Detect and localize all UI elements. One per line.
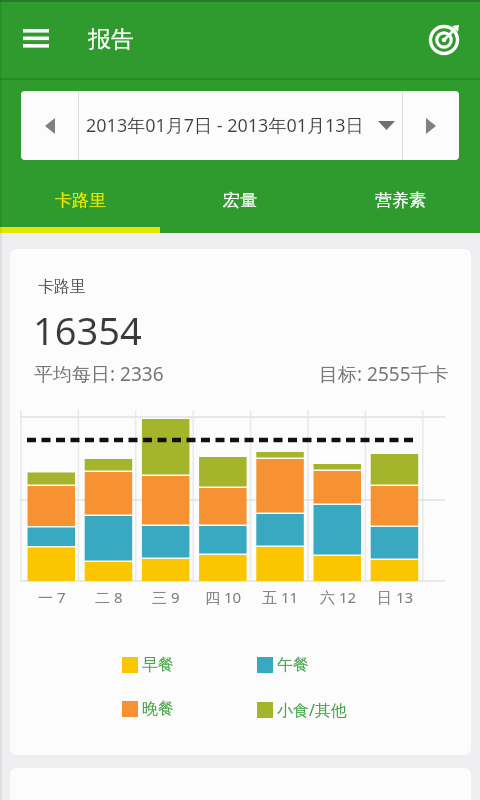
- staticText: 早餐: [142, 655, 174, 675]
- staticText: 晚餐: [142, 699, 174, 719]
- staticText: 三 9: [152, 587, 180, 607]
- staticText: 小食/其他: [277, 699, 347, 721]
- staticText: 营养素: [375, 190, 426, 211]
- button[interactable]: [14, 17, 58, 61]
- button[interactable]: 2013年01月7日 - 2013年01月13日: [79, 91, 402, 160]
- staticText: 目标: 2555千卡: [319, 361, 449, 387]
- staticText: 一 7: [38, 587, 66, 607]
- staticText: 五 11: [262, 587, 299, 607]
- staticText: 平均每日: 2336: [34, 361, 164, 387]
- button[interactable]: 卡路里: [0, 168, 160, 233]
- staticText: 16354: [33, 304, 142, 356]
- button[interactable]: [403, 91, 459, 160]
- staticText: 四 10: [205, 587, 242, 607]
- button[interactable]: [21, 91, 78, 160]
- staticText: 卡路里: [55, 190, 106, 211]
- staticText: 日 13: [377, 587, 414, 607]
- staticText: 六 12: [320, 587, 357, 607]
- staticText: 午餐: [277, 655, 309, 675]
- button[interactable]: 宏量: [160, 168, 320, 233]
- button[interactable]: 营养素: [320, 168, 480, 233]
- staticText: 二 8: [95, 587, 123, 607]
- staticText: 宏量: [223, 190, 257, 211]
- staticText: 2013年01月7日 - 2013年01月13日: [86, 113, 364, 138]
- button[interactable]: [422, 16, 468, 62]
- staticText: 卡路里: [38, 277, 86, 297]
- staticText: 报告: [88, 25, 134, 54]
